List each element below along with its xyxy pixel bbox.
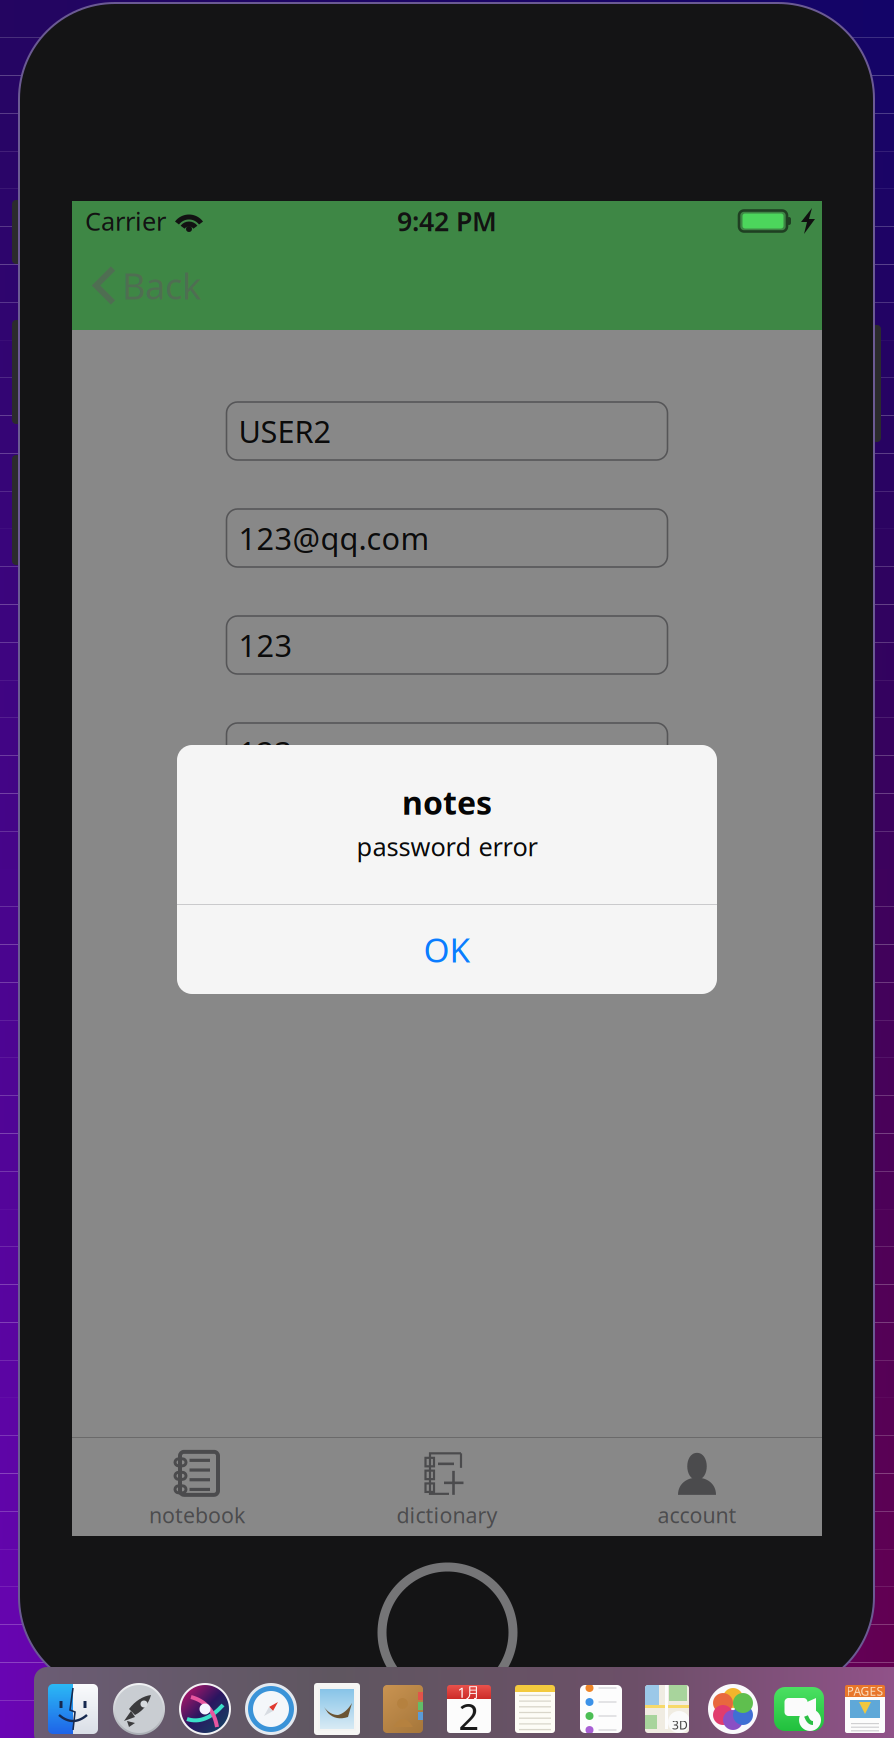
staticText: dictionary bbox=[396, 1501, 497, 1529]
staticText: OK bbox=[423, 927, 470, 972]
staticText: notebook bbox=[149, 1501, 245, 1529]
staticText: password error bbox=[356, 829, 537, 863]
staticText: PAGES bbox=[846, 1683, 883, 1699]
staticText: 2 bbox=[458, 1692, 479, 1738]
button[interactable]: Back bbox=[72, 241, 215, 330]
staticText: notes bbox=[402, 781, 492, 823]
staticText: Back bbox=[122, 262, 201, 309]
button[interactable]: dictionary bbox=[322, 1438, 572, 1536]
button[interactable]: notebook bbox=[72, 1438, 322, 1536]
staticText: 123 bbox=[238, 625, 292, 665]
staticText: 123 bbox=[238, 732, 292, 772]
staticText: Carrier bbox=[85, 204, 166, 238]
button[interactable]: OK bbox=[177, 905, 717, 994]
staticText: 1月 bbox=[457, 1682, 480, 1702]
button[interactable]: account bbox=[572, 1438, 822, 1536]
staticText: 123@qq.com bbox=[238, 518, 429, 558]
staticText: 9:42 PM bbox=[397, 203, 497, 239]
staticText: 3D bbox=[672, 1717, 688, 1733]
staticText: account bbox=[657, 1501, 736, 1529]
staticText: USER2 bbox=[238, 411, 331, 451]
